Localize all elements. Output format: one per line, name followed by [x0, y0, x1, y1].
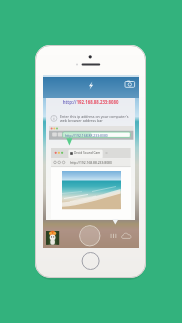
- staticText: http://192.168.88.233:8080: [51, 160, 131, 166]
- button[interactable]: Quality: [110, 233, 118, 239]
- staticText: Enter this ip address on your computer's…: [60, 114, 129, 123]
- staticText: http://192.168.88.233:8080: [46, 99, 135, 106]
- button[interactable]: Flash: [86, 80, 96, 91]
- button[interactable]: Last photo: [46, 231, 59, 245]
- button[interactable]: Shutter: [79, 225, 101, 247]
- staticText: Droid Sound Cam: [74, 151, 101, 155]
- button[interactable]: Enter this ip address on your computer's…: [50, 113, 129, 124]
- staticText: http://192.168.88.233:8080: [65, 133, 108, 138]
- button[interactable]: Switch camera: [124, 80, 136, 88]
- button[interactable]: Cloud upload: [121, 232, 132, 240]
